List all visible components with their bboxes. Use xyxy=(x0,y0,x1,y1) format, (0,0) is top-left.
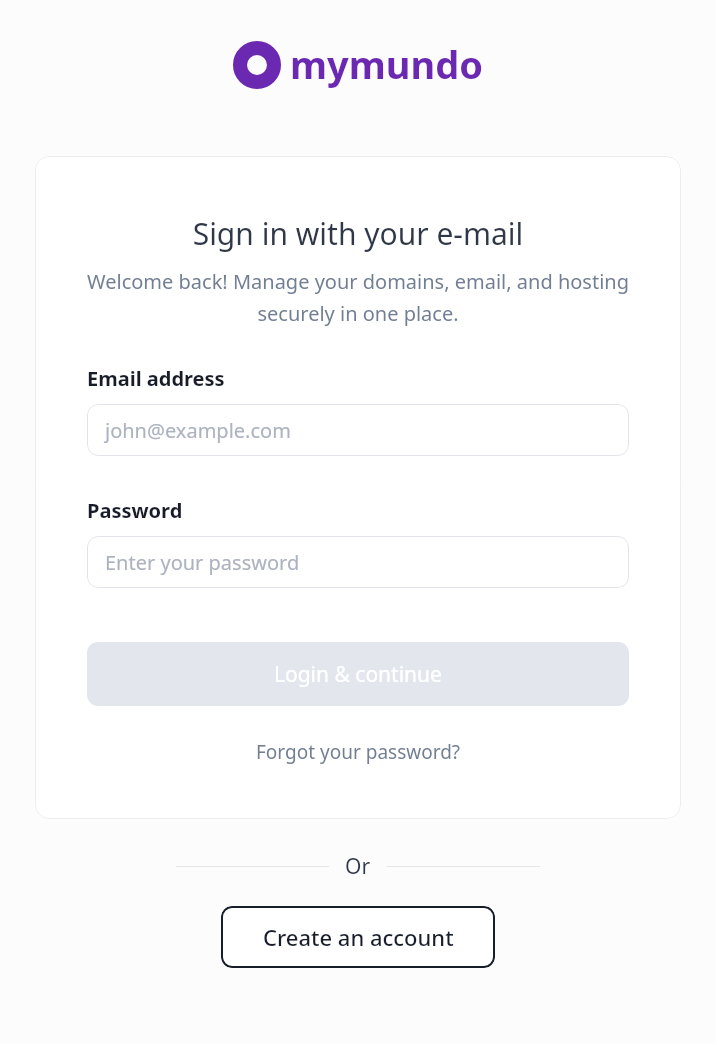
staticText: Password xyxy=(87,497,629,524)
button[interactable]: Forgot your password? xyxy=(250,735,467,769)
staticText: Create an account xyxy=(263,922,454,952)
button[interactable]: Enter your password xyxy=(87,536,629,588)
staticText: Or xyxy=(345,852,371,881)
staticText: Enter your password xyxy=(105,549,300,576)
button[interactable]: Login & continue xyxy=(87,642,629,706)
staticText: Welcome back! Manage your domains, email… xyxy=(87,268,629,327)
button[interactable]: mymundo xyxy=(233,39,483,91)
staticText: Sign in with your e-mail xyxy=(87,213,629,254)
staticText: Login & continue xyxy=(274,660,442,689)
button[interactable]: Create an account xyxy=(221,906,495,968)
staticText: Email address xyxy=(87,365,629,392)
staticText: mymundo xyxy=(290,38,483,90)
button[interactable]: john@example.com xyxy=(87,404,629,456)
staticText: Forgot your password? xyxy=(256,739,461,765)
staticText: john@example.com xyxy=(105,417,291,444)
